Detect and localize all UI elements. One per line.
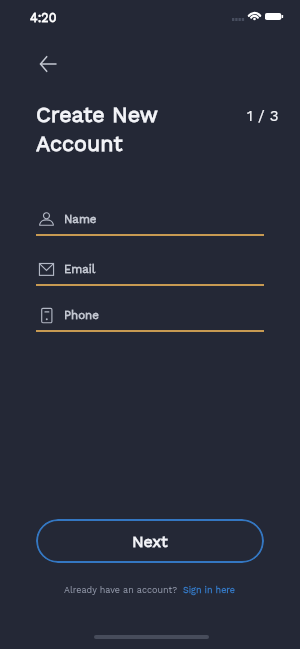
staticText: 4:20 bbox=[30, 10, 57, 25]
staticText: Name bbox=[64, 212, 97, 225]
staticText: 1 / 3 bbox=[247, 107, 279, 125]
button[interactable]: Back bbox=[32, 48, 64, 80]
staticText: Phone bbox=[64, 308, 99, 321]
button[interactable]: Phone bbox=[39, 306, 265, 325]
staticText: Next bbox=[132, 532, 168, 551]
button[interactable]: Next bbox=[36, 519, 264, 563]
staticText: Create New Account bbox=[36, 102, 158, 156]
button[interactable]: Name bbox=[39, 210, 265, 229]
staticText: Sign in here bbox=[183, 585, 236, 596]
staticText: Already have an account? bbox=[64, 585, 178, 596]
button[interactable]: Email bbox=[39, 260, 265, 279]
staticText: Email bbox=[64, 262, 96, 275]
button[interactable]: Sign in here bbox=[183, 585, 236, 596]
